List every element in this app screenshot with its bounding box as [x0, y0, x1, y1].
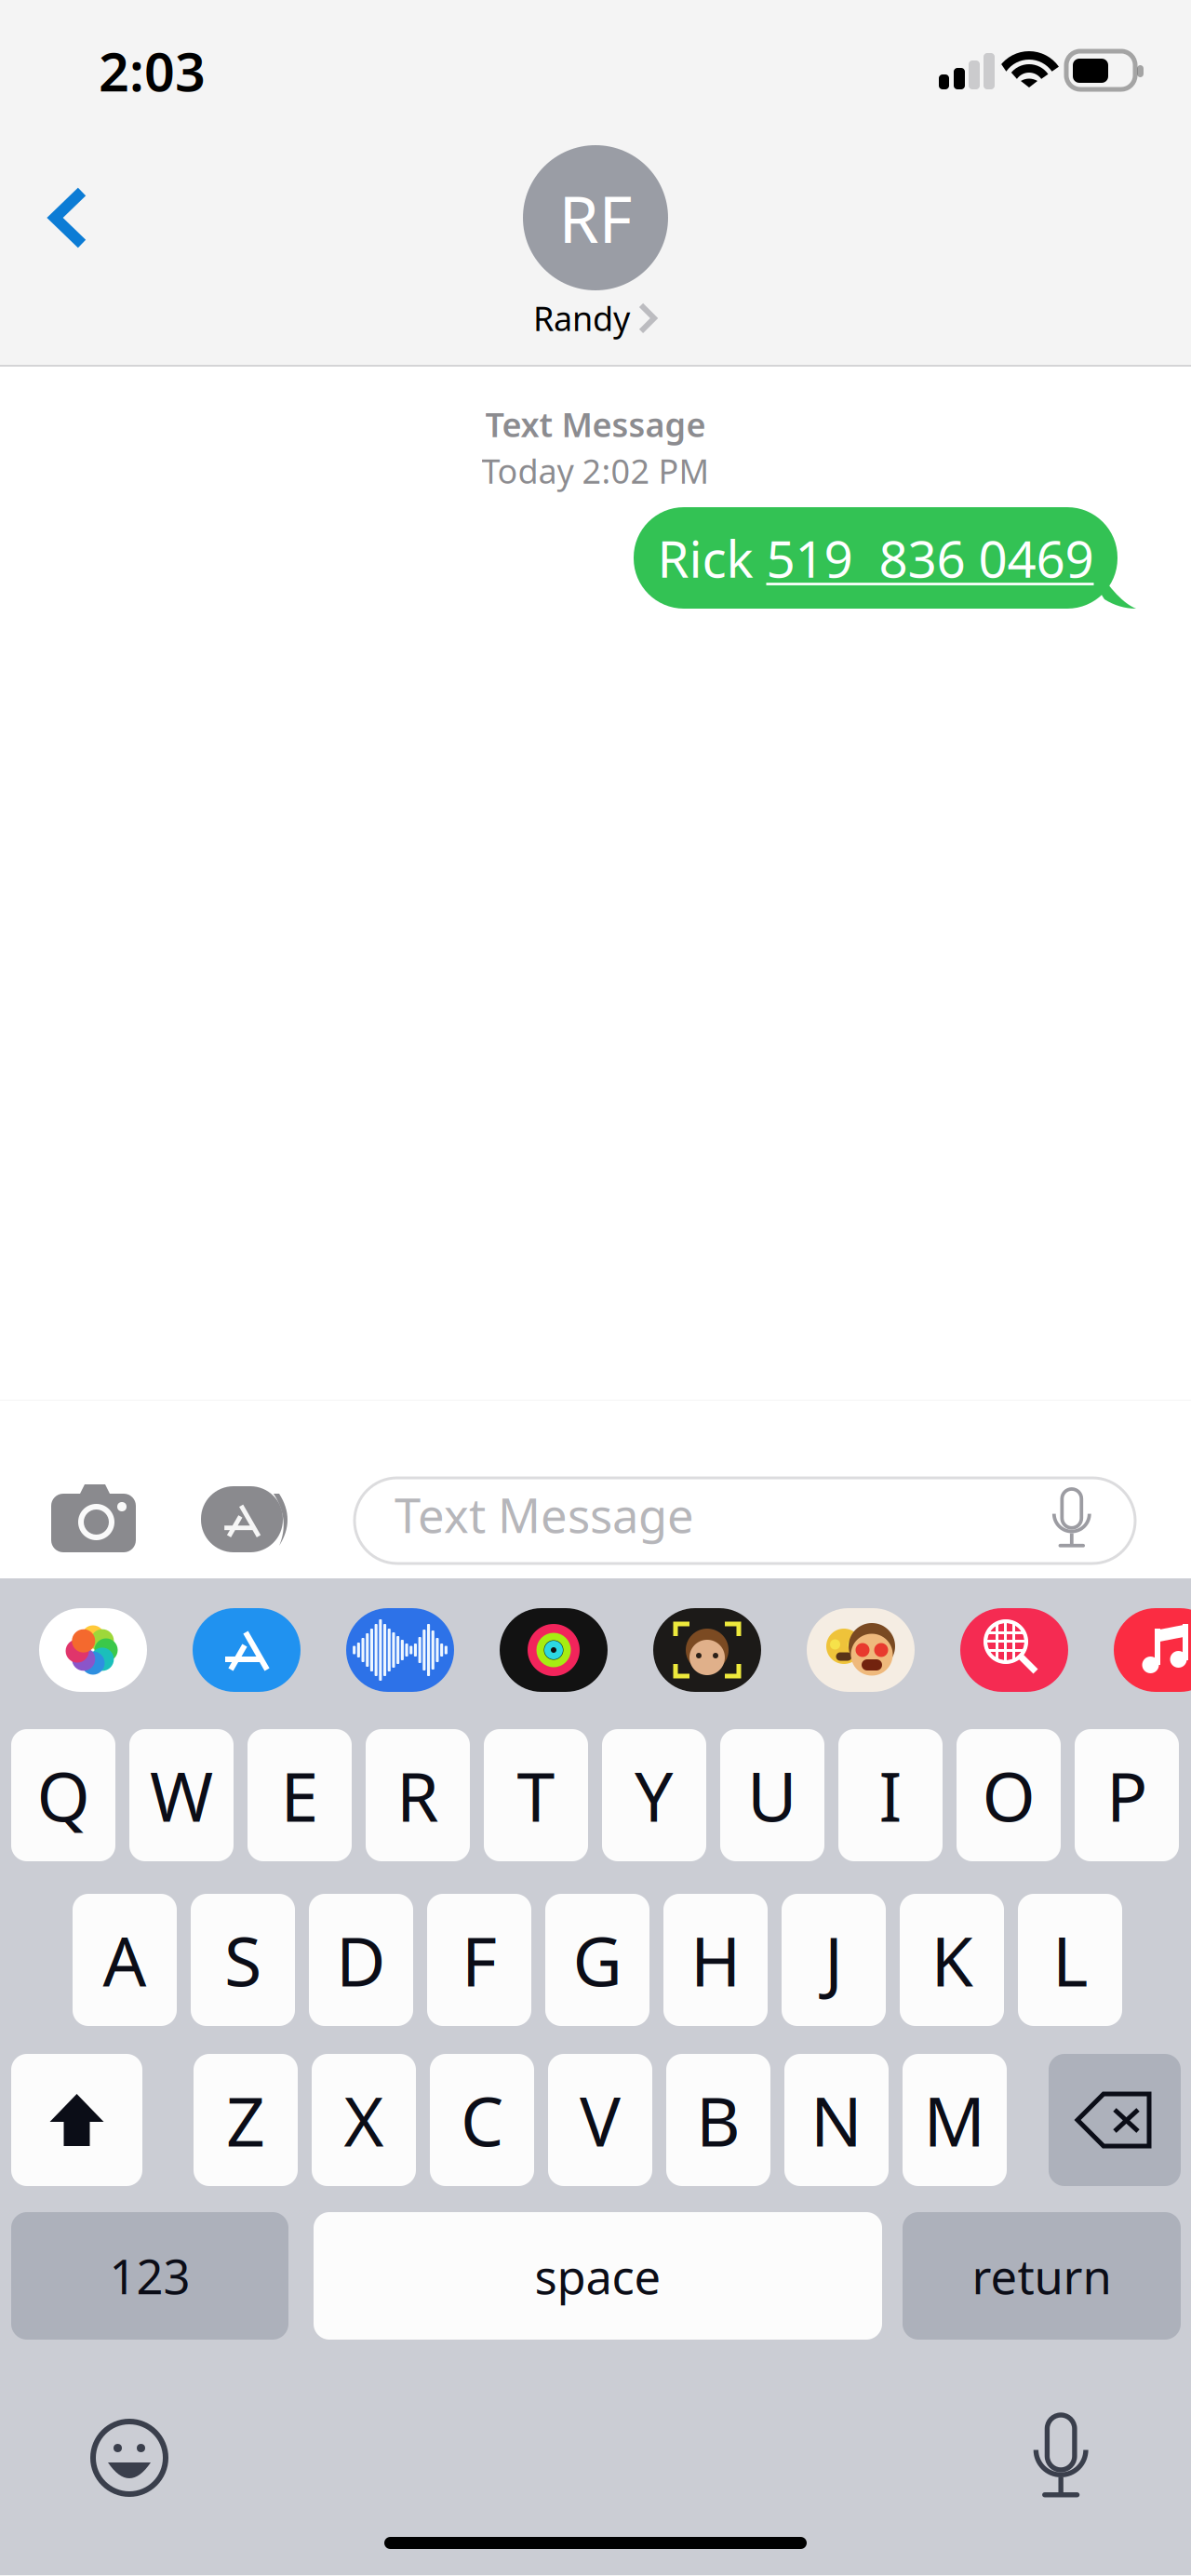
button[interactable]: return: [903, 2212, 1181, 2340]
staticText: Q: [37, 1750, 90, 1841]
staticText: RF: [559, 175, 632, 261]
staticText: S: [224, 1915, 261, 2005]
button[interactable]: Photos: [39, 1608, 147, 1692]
button[interactable]: O: [957, 1729, 1061, 1861]
button[interactable]: Emoji: [93, 2422, 166, 2494]
staticText: D: [336, 1915, 386, 2005]
button[interactable]: Z: [194, 2054, 298, 2186]
button[interactable]: K: [900, 1894, 1004, 2026]
button[interactable]: Y: [602, 1729, 706, 1861]
button[interactable]: G: [545, 1894, 649, 2026]
button[interactable]: H: [663, 1894, 768, 2026]
staticText: O: [982, 1750, 1035, 1841]
button[interactable]: Q: [11, 1729, 115, 1861]
staticText: space: [535, 2245, 661, 2307]
button[interactable]: Audio Message: [346, 1608, 454, 1692]
button[interactable]: J: [782, 1894, 886, 2026]
staticText: M: [923, 2075, 986, 2165]
staticText: Text Message: [395, 1483, 694, 1546]
button[interactable]: X: [312, 2054, 416, 2186]
button[interactable]: A: [73, 1894, 177, 2026]
button[interactable]: P: [1075, 1729, 1179, 1861]
staticText: N: [810, 2075, 863, 2165]
staticText: H: [690, 1915, 741, 2005]
staticText: Z: [226, 2075, 265, 2165]
staticText: Randy: [533, 296, 630, 340]
staticText: C: [461, 2075, 503, 2165]
staticText: K: [931, 1915, 973, 2005]
button[interactable]: N: [784, 2054, 889, 2186]
staticText: U: [747, 1750, 797, 1841]
staticText: 2:03: [99, 35, 206, 106]
staticText: B: [696, 2075, 741, 2165]
staticText: Today 2:02 PM: [482, 448, 709, 493]
button[interactable]: F: [427, 1894, 531, 2026]
button[interactable]: Camera: [51, 1483, 136, 1553]
staticText: G: [573, 1915, 622, 2005]
staticText: 123: [109, 2245, 190, 2307]
button[interactable]: space: [314, 2212, 882, 2340]
staticText: E: [281, 1750, 319, 1841]
button[interactable]: Music: [1114, 1608, 1191, 1692]
staticText: T: [517, 1750, 555, 1841]
button[interactable]: Back: [21, 162, 114, 274]
button[interactable]: V: [548, 2054, 652, 2186]
staticText: F: [462, 1915, 497, 2005]
staticText: J: [824, 1915, 843, 2005]
button[interactable]: W: [129, 1729, 234, 1861]
button[interactable]: Images: [960, 1608, 1068, 1692]
staticText: X: [344, 2075, 384, 2165]
button[interactable]: Dictation: [1031, 2415, 1091, 2505]
button[interactable]: E: [248, 1729, 352, 1861]
staticText: W: [150, 1750, 213, 1841]
staticText: A: [103, 1915, 147, 2005]
staticText: R: [396, 1750, 439, 1841]
staticText: I: [879, 1750, 902, 1841]
staticText: return: [972, 2245, 1111, 2307]
button[interactable]: T: [484, 1729, 588, 1861]
button[interactable]: Memoji: [653, 1608, 761, 1692]
staticText: P: [1106, 1750, 1147, 1841]
button[interactable]: App Store: [193, 1608, 301, 1692]
button[interactable]: R: [366, 1729, 470, 1861]
button[interactable]: I: [838, 1729, 943, 1861]
button[interactable]: S: [191, 1894, 295, 2026]
staticText: Rick 519 836 0469: [657, 524, 1094, 592]
button[interactable]: U: [720, 1729, 824, 1861]
button[interactable]: Text Message field: [355, 1478, 1135, 1563]
staticText: Y: [635, 1750, 674, 1841]
button[interactable]: Fitness: [500, 1608, 608, 1692]
button[interactable]: B: [666, 2054, 770, 2186]
staticText: L: [1052, 1915, 1088, 2005]
button[interactable]: C: [430, 2054, 534, 2186]
button[interactable]: Delete: [1049, 2054, 1181, 2186]
staticText: V: [580, 2075, 621, 2165]
button[interactable]: M: [903, 2054, 1007, 2186]
button[interactable]: Stickers: [807, 1608, 915, 1692]
button[interactable]: Apps: [201, 1484, 296, 1555]
staticText: Text Message: [485, 402, 706, 447]
button[interactable]: Shift: [11, 2054, 142, 2186]
button[interactable]: L: [1018, 1894, 1122, 2026]
button[interactable]: 123: [11, 2212, 288, 2340]
button[interactable]: D: [309, 1894, 413, 2026]
button[interactable]: RF: [402, 145, 789, 340]
